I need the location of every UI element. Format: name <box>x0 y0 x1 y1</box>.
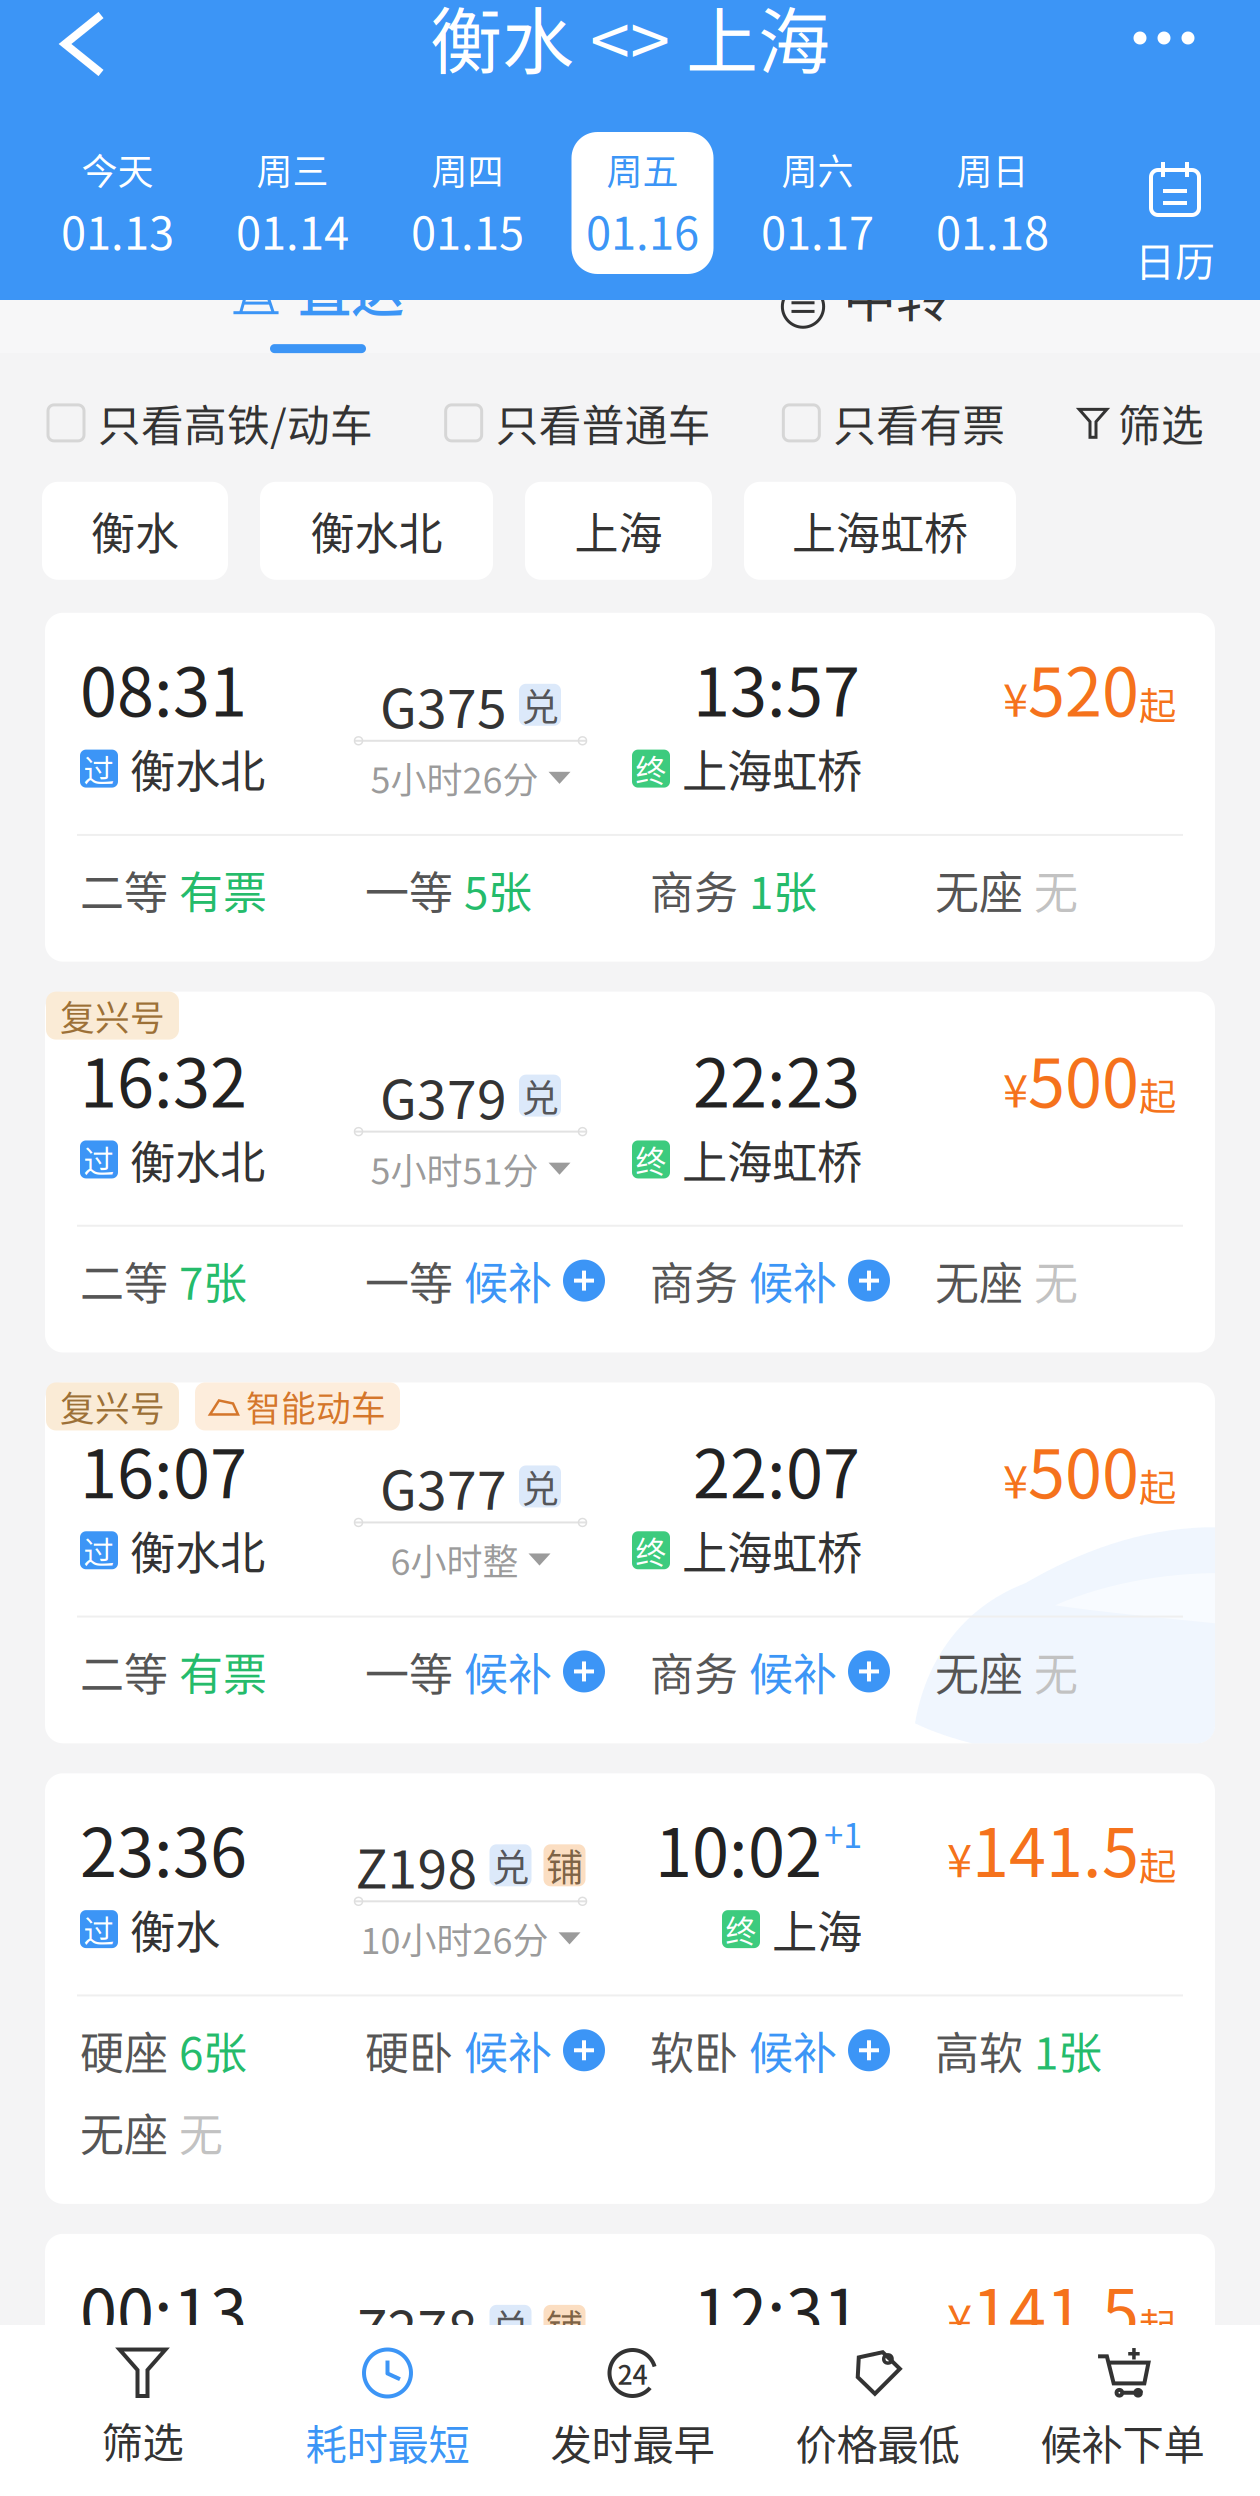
staticText: 周六 <box>781 143 853 195</box>
staticText: 上海虹桥 <box>682 1127 862 1192</box>
staticText: 有票 <box>179 858 267 922</box>
button[interactable]: 只看普通车 <box>446 392 711 454</box>
staticText: 高软 <box>935 2018 1023 2082</box>
staticText: 衡水 <> 上海 <box>430 0 830 88</box>
button[interactable]: 耗时最短 <box>265 2347 510 2496</box>
staticText: ¥ <box>1003 664 1028 730</box>
button[interactable]: 直达 <box>232 289 404 375</box>
staticText: 候补 <box>464 1640 552 1703</box>
staticText: 01.17 <box>761 197 874 263</box>
staticText: 00:13 <box>80 2260 247 2357</box>
staticText: 衡水 <box>130 1896 220 1962</box>
button[interactable]: 周五 <box>555 132 730 274</box>
button[interactable]: 上海虹桥 <box>744 482 1016 580</box>
button[interactable]: 返回 <box>0 0 166 114</box>
staticText: 上海虹桥 <box>792 499 968 563</box>
staticText: 衡水 <box>130 2357 220 2422</box>
button[interactable]: 候补下单 <box>1000 2347 1245 2496</box>
staticText: 商务 <box>650 1640 738 1703</box>
staticText: 16:32 <box>80 1030 247 1127</box>
button[interactable]: 只看有票 <box>783 392 1005 454</box>
staticText: 兑 <box>521 678 558 732</box>
staticText: 10:02 <box>655 1800 822 1896</box>
staticText: 13:57 <box>693 639 860 736</box>
button[interactable]: 衡水 <box>42 482 228 580</box>
button[interactable]: 今天 <box>30 132 205 274</box>
staticText: 直达 <box>298 251 404 328</box>
staticText: 只看高铁/动车 <box>98 392 373 454</box>
staticText: 一等 <box>365 1640 453 1703</box>
button[interactable]: 24 <box>510 2347 755 2496</box>
button[interactable]: 周三 <box>205 132 380 274</box>
staticText: 141.5 <box>972 1800 1139 1896</box>
staticText: 5张 <box>464 858 532 922</box>
staticText: 22:23 <box>693 1030 860 1127</box>
staticText: 商务 <box>650 858 738 922</box>
staticText: 500 <box>1028 1030 1139 1127</box>
button[interactable]: 筛选 <box>20 2347 265 2496</box>
button[interactable]: 价格最低 <box>755 2347 1000 2496</box>
staticText: 过 <box>83 746 114 791</box>
staticText: 01.18 <box>936 197 1049 263</box>
staticText: 周四 <box>431 143 503 195</box>
staticText: 候补 <box>749 1640 837 1703</box>
button[interactable]: 筛选 <box>1078 392 1204 454</box>
staticText: G379 <box>380 1057 507 1134</box>
staticText: G375 <box>380 666 507 743</box>
staticText: 候补 <box>749 1249 837 1312</box>
staticText: 无座 <box>935 1249 1023 1312</box>
staticText: 1张 <box>749 858 817 922</box>
button[interactable]: 中转 <box>779 293 949 371</box>
staticText: 起 <box>1139 1068 1176 1122</box>
staticText: 无 <box>1034 1640 1078 1703</box>
staticText: 500 <box>1028 1421 1139 1517</box>
button[interactable]: 周日 <box>905 132 1080 274</box>
staticText: 无 <box>1034 1249 1078 1312</box>
staticText: 衡水 <box>91 499 179 563</box>
staticText: 硬座 <box>80 2018 168 2082</box>
staticText: ¥ <box>1003 1055 1028 1121</box>
staticText: 软卧 <box>650 2018 738 2082</box>
staticText: 兑 <box>492 2299 529 2353</box>
staticText: 起 <box>1139 677 1176 731</box>
staticText: 无座 <box>935 1640 1023 1703</box>
button[interactable]: 只看高铁/动车 <box>48 392 373 454</box>
button[interactable]: 更多 <box>1068 0 1260 120</box>
staticText: 12:31 <box>693 2260 860 2357</box>
staticText: 7张 <box>179 1249 247 1312</box>
button[interactable]: 周六 <box>730 132 905 274</box>
staticText: 二等 <box>80 1640 168 1703</box>
staticText: 候补 <box>464 2018 552 2082</box>
staticText: 一等 <box>365 1249 453 1312</box>
button[interactable]: 周四 <box>380 132 555 274</box>
staticText: 发时最早 <box>550 2412 714 2472</box>
staticText: 24 <box>617 2354 647 2392</box>
staticText: 01.14 <box>236 197 349 263</box>
button[interactable]: 衡水北 <box>260 482 493 580</box>
staticText: 终 <box>725 1907 756 1951</box>
staticText: 上海 <box>574 499 662 563</box>
staticText: 5小时26分 <box>370 752 538 804</box>
staticText: 6小时整 <box>390 1533 518 1586</box>
staticText: 候补 <box>749 2018 837 2082</box>
staticText: 衡水北 <box>130 1127 265 1192</box>
staticText: 衡水北 <box>130 736 265 801</box>
staticText: 铺 <box>546 1838 583 1892</box>
staticText: 起 <box>1139 2298 1176 2352</box>
button[interactable]: 日历 <box>1104 132 1246 274</box>
staticText: 5小时51分 <box>370 1143 538 1195</box>
staticText: 上海虹桥 <box>682 1517 862 1583</box>
staticText: Z198 <box>355 1827 477 1904</box>
button[interactable]: 上海 <box>525 482 712 580</box>
staticText: 今天 <box>81 143 153 195</box>
staticText: 智能动车 <box>246 1381 386 1432</box>
staticText: 08:31 <box>80 639 247 736</box>
staticText: 过 <box>83 1528 114 1572</box>
staticText: 一等 <box>365 858 453 922</box>
